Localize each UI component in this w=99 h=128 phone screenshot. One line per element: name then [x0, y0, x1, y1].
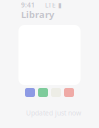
staticText: 9:41	[21, 1, 35, 9]
button[interactable]: Music	[64, 88, 74, 97]
staticText: Updated just now	[26, 109, 81, 117]
button[interactable]: Calendar	[25, 88, 35, 97]
button[interactable]: Messages	[38, 88, 48, 97]
staticText: LTE ▮	[45, 1, 62, 9]
staticText: Library	[21, 8, 54, 21]
